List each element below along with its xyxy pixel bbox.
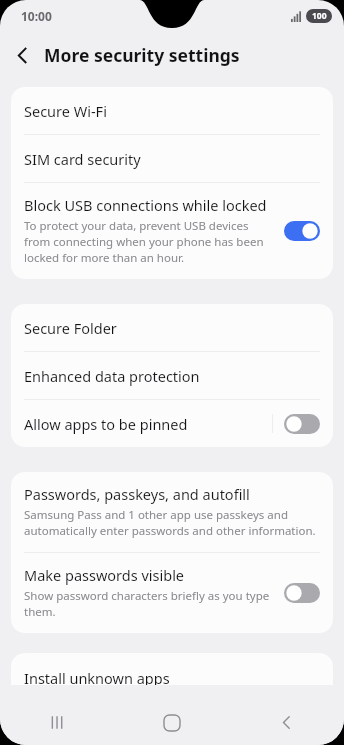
button[interactable]: Home [114, 700, 229, 745]
button[interactable]: Recents [0, 700, 114, 745]
button[interactable]: Passwords, passkeys, and autofill [11, 472, 333, 552]
staticText: 100 [312, 10, 327, 22]
button[interactable]: Install unknown apps [11, 653, 333, 685]
staticText: To protect your data, prevent USB device… [24, 218, 272, 266]
button[interactable]: Back [0, 33, 44, 77]
button[interactable]: Secure Wi-Fi [11, 87, 333, 134]
staticText: Enhanced data protection [24, 366, 200, 386]
button[interactable]: Allow apps to be pinned [11, 400, 333, 447]
staticText: Show password characters briefly as you … [24, 588, 272, 620]
button[interactable]: SIM card security [11, 135, 333, 182]
staticText: Make passwords visible [24, 565, 185, 585]
staticText: Passwords, passkeys, and autofill [24, 484, 250, 504]
staticText: Allow apps to be pinned [24, 414, 272, 434]
staticText: 10:00 [21, 8, 52, 24]
staticText: More security settings [44, 43, 240, 67]
staticText: Secure Folder [24, 318, 117, 338]
button[interactable]: Make passwords visible [11, 553, 333, 633]
staticText: Secure Wi-Fi [24, 101, 107, 121]
button[interactable]: Block USB connections while locked [11, 183, 333, 279]
button[interactable]: Back [229, 700, 344, 745]
button[interactable]: Enhanced data protection [11, 352, 333, 399]
staticText: Block USB connections while locked [24, 195, 267, 215]
staticText: SIM card security [24, 149, 141, 169]
button[interactable]: Secure Folder [11, 304, 333, 351]
staticText: Install unknown apps [24, 668, 170, 685]
staticText: Samsung Pass and 1 other app use passkey… [24, 507, 320, 539]
